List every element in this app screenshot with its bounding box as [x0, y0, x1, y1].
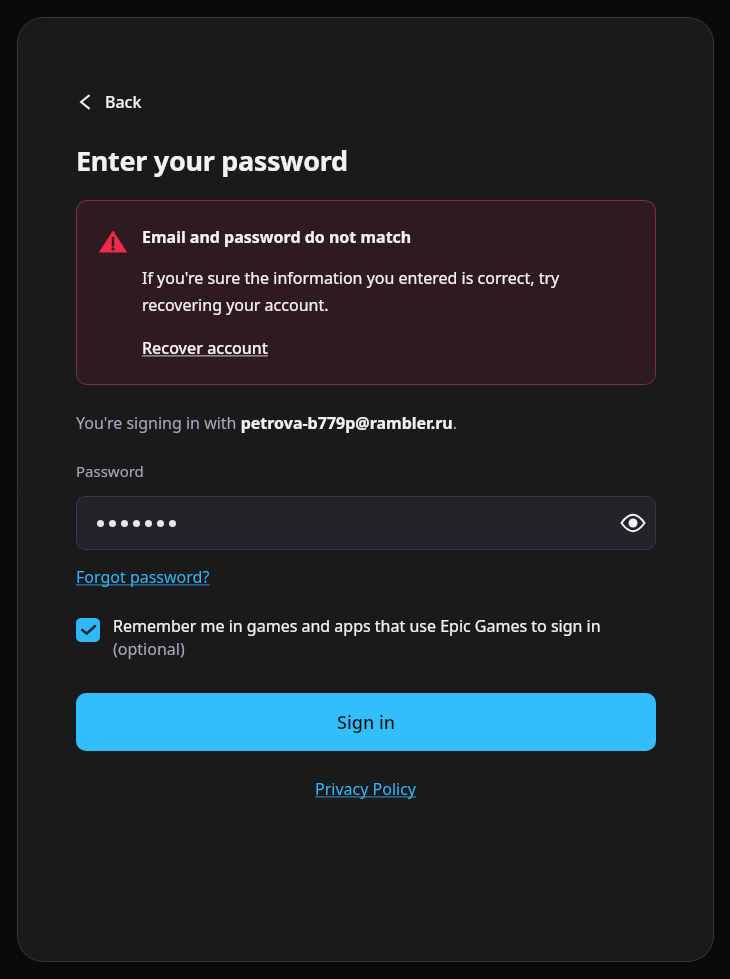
staticText: Sign in [337, 710, 396, 735]
staticText: Recover account [142, 337, 268, 359]
staticText: Remember me in games and apps that use E… [113, 615, 656, 660]
button[interactable]: Show password [76, 496, 656, 550]
button[interactable]: Back [72, 87, 146, 117]
button[interactable]: Show password [610, 500, 656, 546]
button[interactable]: Recover account [142, 337, 268, 359]
staticText: Forgot password? [76, 566, 210, 588]
staticText: Enter your password [76, 142, 348, 179]
button[interactable]: Sign in [76, 693, 656, 751]
staticText: If you're sure the information you enter… [142, 267, 636, 316]
button[interactable]: Remember me in games and apps that use E… [76, 615, 656, 660]
staticText: Email and password do not match [142, 226, 412, 248]
staticText: Password [76, 461, 144, 481]
staticText: You're signing in with petrova-b779p@ram… [76, 412, 458, 434]
button[interactable]: Privacy Policy [315, 778, 416, 800]
staticText: Privacy Policy [315, 778, 416, 800]
button[interactable]: Forgot password? [76, 566, 210, 588]
staticText: Back [105, 91, 142, 113]
